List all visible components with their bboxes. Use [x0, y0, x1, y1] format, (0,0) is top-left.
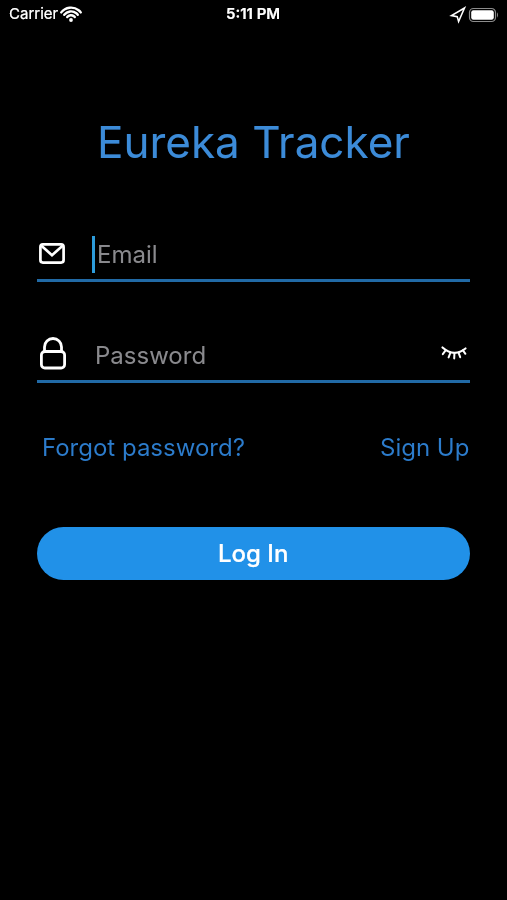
staticText: Log In [218, 539, 289, 568]
staticText: Email [97, 240, 158, 269]
staticText: Password [95, 341, 207, 370]
button[interactable]: Sign Up [375, 428, 475, 467]
staticText: 5:11 PM [226, 4, 281, 22]
staticText: Eureka Tracker [97, 115, 410, 168]
staticText: Carrier [9, 4, 59, 22]
staticText: Sign Up [380, 433, 470, 462]
button[interactable]: Password [37, 330, 470, 376]
button[interactable]: Log In [37, 527, 470, 580]
button[interactable]: Email [37, 230, 470, 276]
staticText: Forgot password? [42, 433, 245, 462]
button[interactable]: Forgot password? [37, 428, 250, 467]
